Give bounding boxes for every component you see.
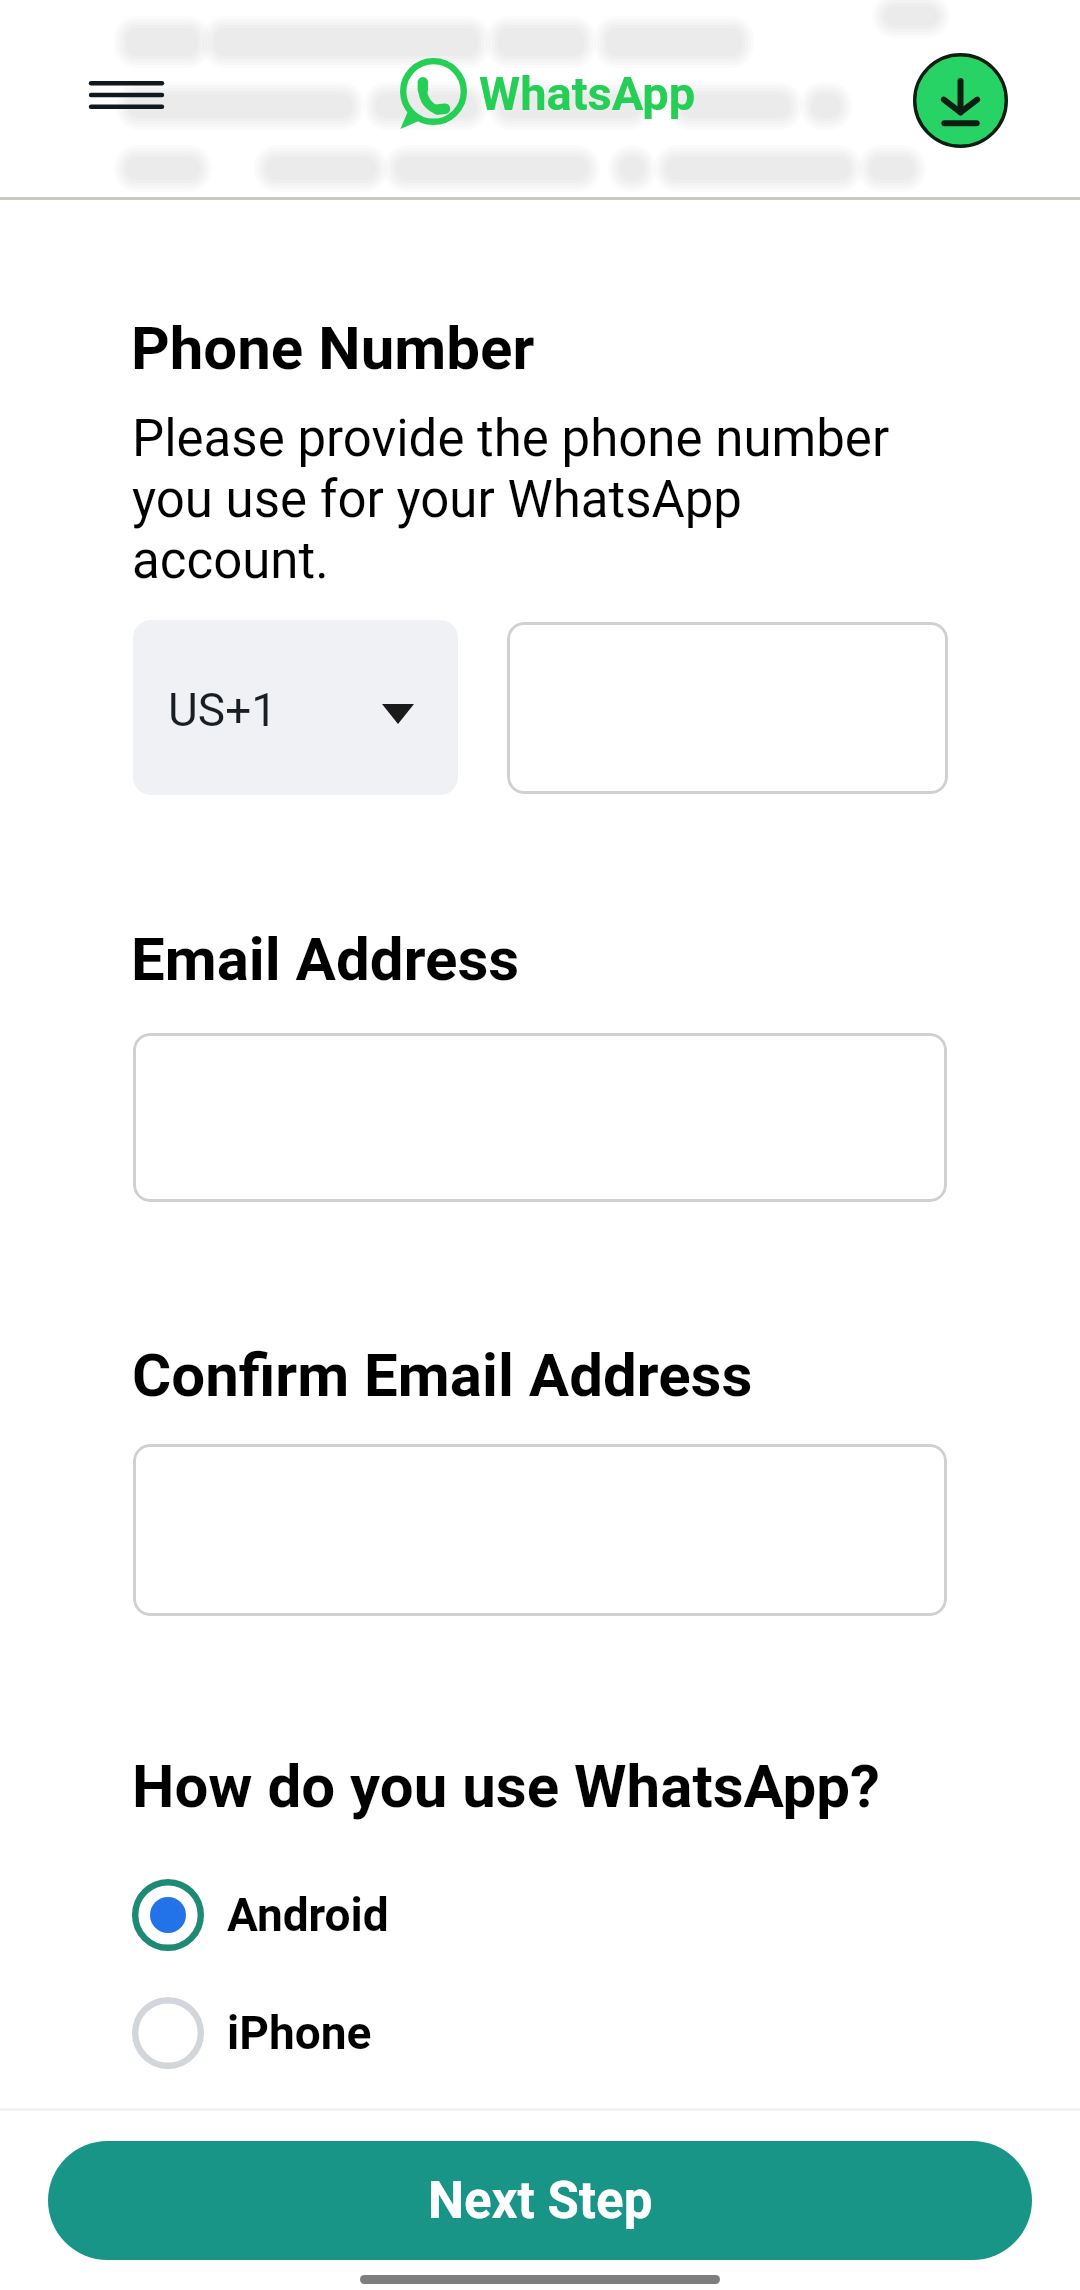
staticText: How do you use WhatsApp? <box>132 1751 880 1821</box>
button[interactable]: iPhone <box>132 1997 632 2069</box>
button[interactable]: WhatsApp <box>395 52 700 136</box>
button[interactable] <box>133 1033 947 1202</box>
staticText: Email Address <box>131 924 520 994</box>
button[interactable]: Android <box>132 1879 632 1951</box>
staticText: US+1 <box>168 683 278 737</box>
button[interactable]: Menu <box>61 53 193 147</box>
staticText: Confirm Email Address <box>132 1340 753 1410</box>
staticText: iPhone <box>227 2006 372 2060</box>
button[interactable]: Next Step <box>48 2141 1032 2260</box>
staticText: Phone Number <box>131 313 535 383</box>
staticText: WhatsApp <box>479 66 696 121</box>
button[interactable] <box>133 1444 947 1616</box>
button[interactable]: Download <box>902 42 1018 158</box>
staticText: Next Step <box>428 2171 653 2231</box>
staticText: Please provide the phone number you use … <box>132 409 922 591</box>
button[interactable] <box>507 622 948 794</box>
staticText: Android <box>227 1888 389 1942</box>
button[interactable]: US+1 <box>133 620 458 795</box>
